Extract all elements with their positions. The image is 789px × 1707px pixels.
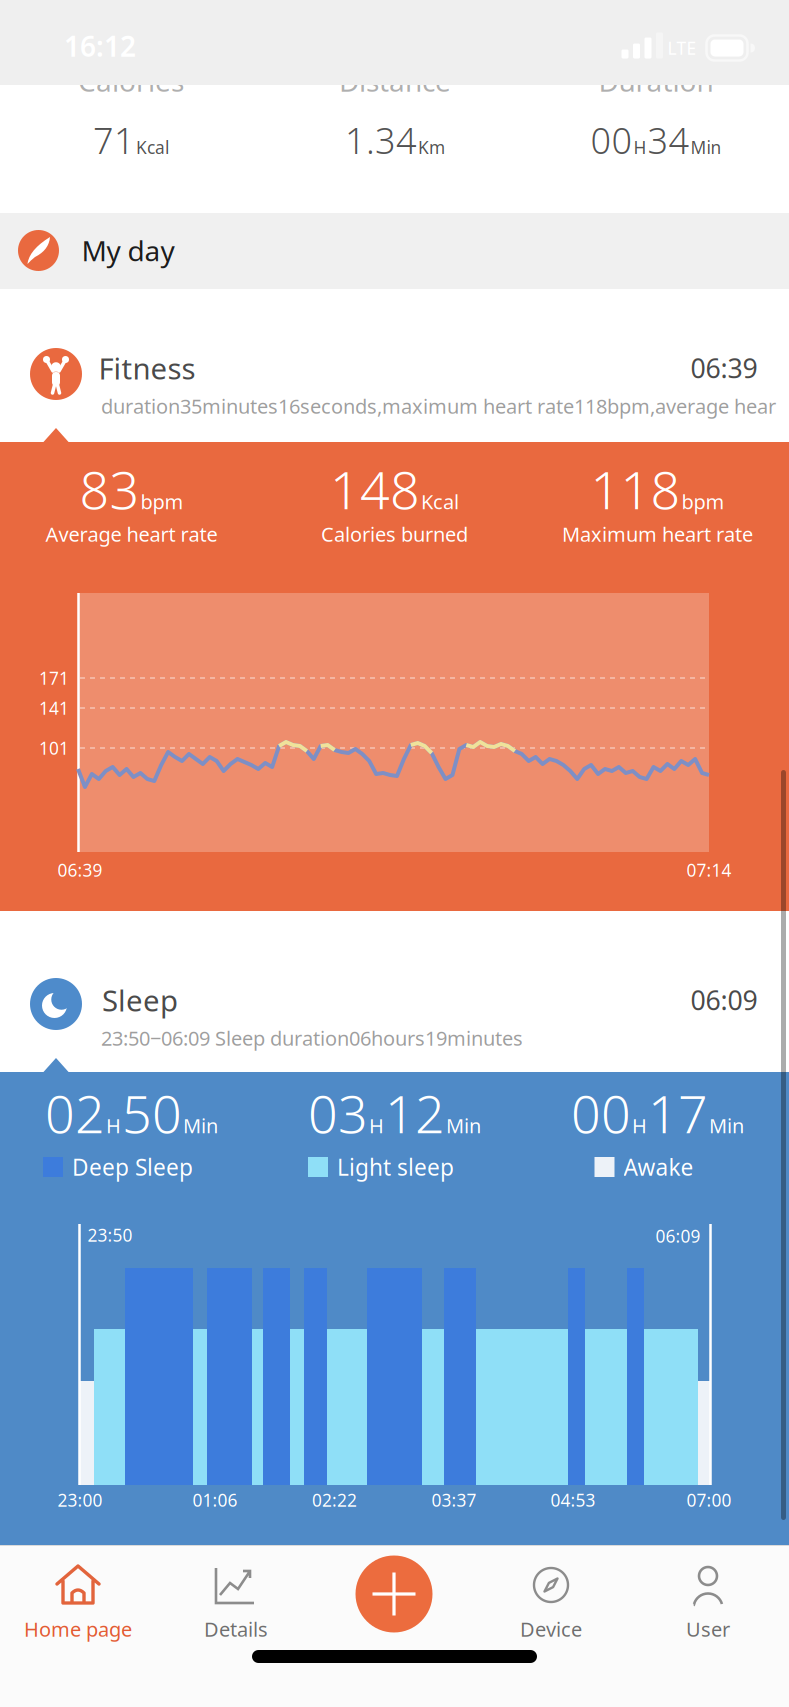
staticText: My day	[81, 232, 174, 269]
staticText: H	[106, 1112, 121, 1139]
staticText: Distance	[339, 62, 451, 100]
staticText: 101	[39, 736, 69, 759]
staticText: 23:50	[87, 1223, 132, 1246]
staticText: Sleep	[102, 980, 178, 1019]
staticText: Home page	[24, 1616, 132, 1642]
staticText: 03:37	[431, 1488, 476, 1511]
button[interactable]: Sleep	[0, 911, 789, 1072]
staticText: 23:50−06:09 Sleep duration06hours19minut…	[101, 1025, 523, 1051]
staticText: Maximum heart rate	[562, 521, 753, 547]
staticText: 06:39	[57, 858, 102, 881]
staticText: Min	[709, 1112, 744, 1139]
staticText: 71	[93, 116, 135, 164]
staticText: Details	[204, 1616, 268, 1642]
button[interactable]: Home page	[0, 1563, 156, 1663]
staticText: 34	[647, 116, 689, 164]
staticText: Light sleep	[337, 1152, 454, 1182]
staticText: 00	[590, 116, 632, 164]
button[interactable]: User	[630, 1563, 786, 1663]
button[interactable]: Add	[355, 1555, 432, 1632]
button[interactable]: Device	[473, 1563, 629, 1663]
staticText: Average heart rate	[45, 521, 217, 547]
staticText: Kcal	[136, 136, 169, 159]
staticText: Device	[520, 1616, 582, 1642]
staticText: 118	[590, 454, 680, 524]
staticText: 06:09	[655, 1224, 700, 1247]
staticText: 06:09	[690, 982, 757, 1018]
staticText: Fitness	[98, 348, 195, 387]
staticText: Duration	[598, 62, 713, 100]
staticText: Deep Sleep	[72, 1152, 193, 1182]
button[interactable]: Fitness	[0, 289, 789, 442]
staticText: 02	[45, 1078, 105, 1148]
staticText: Min	[446, 1112, 481, 1139]
staticText: bpm	[681, 488, 724, 515]
staticText: 16:12	[64, 27, 136, 65]
staticText: 03	[308, 1078, 368, 1148]
staticText: Calories	[78, 62, 184, 100]
staticText: 1.34	[345, 116, 417, 164]
staticText: H	[369, 1112, 384, 1139]
staticText: 00	[571, 1078, 631, 1148]
staticText: Awake	[623, 1152, 693, 1182]
staticText: 06:39	[690, 350, 757, 386]
staticText: 83	[79, 454, 139, 524]
staticText: 01:06	[192, 1488, 237, 1511]
staticText: Min	[183, 1112, 218, 1139]
button[interactable]: Details	[157, 1563, 313, 1663]
staticText: Kcal	[421, 488, 459, 515]
staticText: 171	[39, 666, 69, 689]
staticText: LTE	[667, 36, 696, 59]
staticText: Min	[690, 136, 721, 159]
staticText: User	[686, 1616, 730, 1642]
staticText: H	[632, 1112, 647, 1139]
staticText: 23:00	[57, 1488, 102, 1511]
staticText: H	[633, 136, 646, 159]
staticText: 50	[122, 1078, 182, 1148]
staticText: 07:00	[686, 1488, 731, 1511]
staticText: 02:22	[312, 1488, 357, 1511]
staticText: Km	[418, 136, 445, 159]
staticText: 04:53	[550, 1488, 595, 1511]
staticText: 17	[648, 1078, 708, 1148]
staticText: duration35minutes16seconds,maximum heart…	[101, 393, 776, 419]
staticText: Calories burned	[321, 521, 468, 547]
staticText: bpm	[140, 488, 183, 515]
staticText: 148	[330, 454, 420, 524]
staticText: 07:14	[686, 858, 731, 881]
staticText: 141	[39, 696, 69, 719]
staticText: 12	[385, 1078, 445, 1148]
